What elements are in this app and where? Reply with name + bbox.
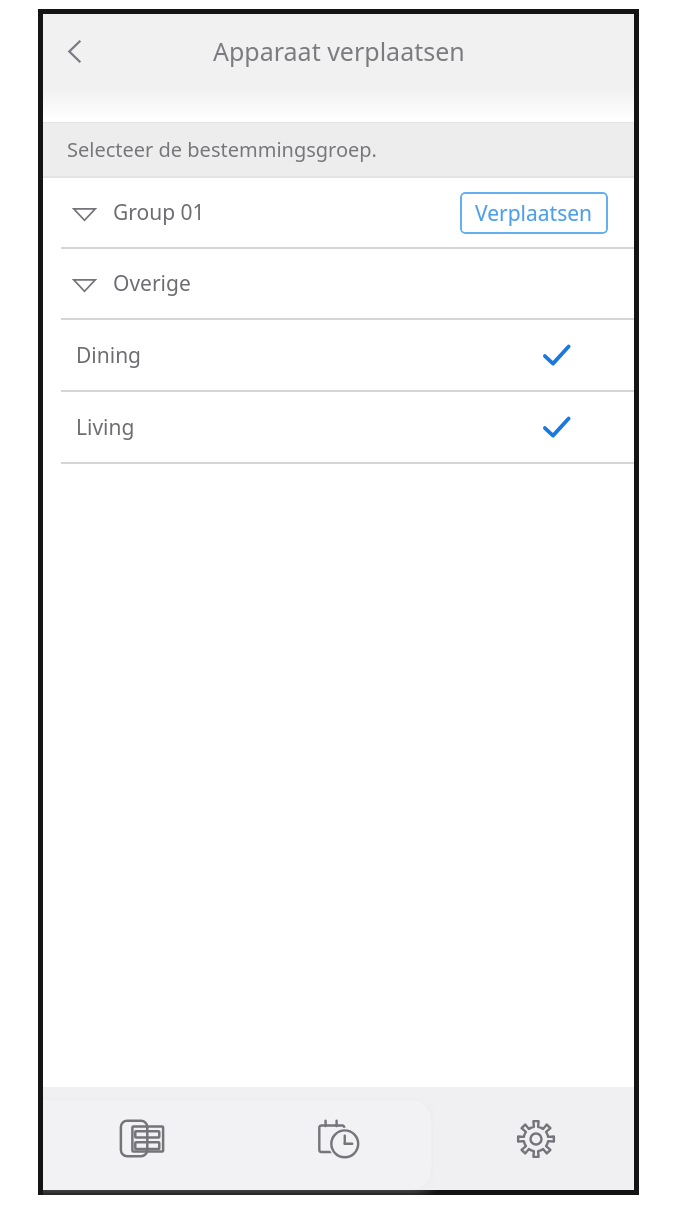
staticText: Selecteer de bestemmingsgroep. (67, 136, 377, 163)
button[interactable]: Dining (43, 320, 634, 390)
button[interactable]: Living (43, 392, 634, 462)
staticText: Overige (113, 269, 191, 298)
staticText: Living (76, 413, 135, 442)
button[interactable]: Schedule (240, 1087, 437, 1190)
button[interactable]: Verplaatsen (460, 192, 608, 234)
staticText: Apparaat verplaatsen (213, 34, 465, 68)
button[interactable]: Overige (43, 249, 634, 318)
staticText: Dining (76, 341, 142, 370)
staticText: Verplaatsen (475, 199, 593, 228)
button[interactable]: Devices (43, 1087, 240, 1190)
staticText: Group 01 (113, 198, 205, 227)
button[interactable]: Settings (437, 1087, 634, 1190)
button[interactable]: Back (43, 19, 107, 83)
button[interactable]: Collapse group (67, 196, 101, 230)
